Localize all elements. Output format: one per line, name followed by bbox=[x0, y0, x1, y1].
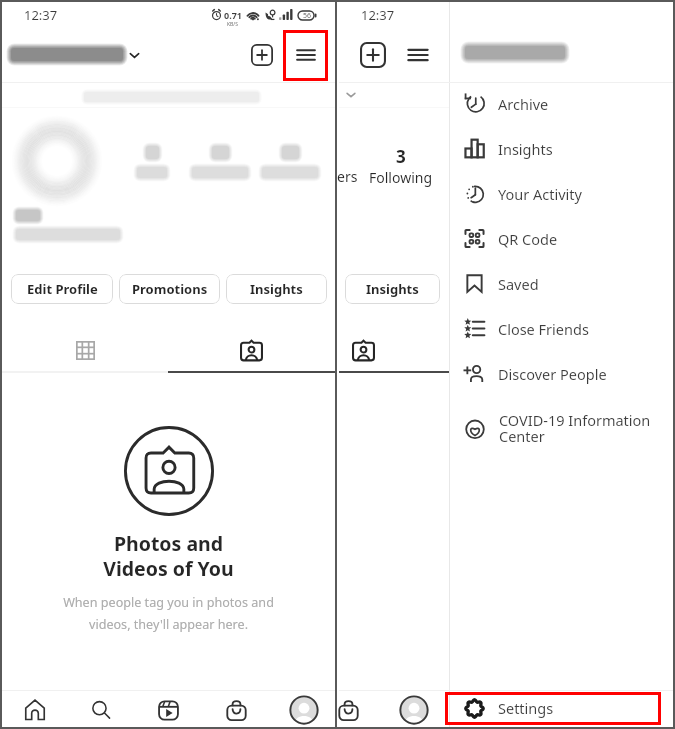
staticText: Discover People bbox=[498, 364, 607, 384]
button[interactable]: Insights bbox=[226, 274, 327, 304]
staticText: 12:37 bbox=[24, 6, 58, 24]
staticText: 3 bbox=[396, 145, 406, 168]
staticText: 0.71 bbox=[224, 9, 242, 21]
button[interactable]: Insights bbox=[345, 274, 440, 304]
staticText: Your Activity bbox=[498, 184, 582, 204]
button[interactable]: Reels bbox=[150, 691, 186, 729]
staticText: 12:37 bbox=[361, 6, 395, 24]
staticText: QR Code bbox=[498, 229, 558, 249]
staticText: Insights bbox=[250, 280, 303, 298]
button[interactable]: Insights bbox=[449, 126, 673, 171]
staticText: Following bbox=[369, 168, 433, 187]
button[interactable]: Profile bbox=[286, 691, 322, 729]
button[interactable]: Close Friends bbox=[449, 306, 673, 351]
button[interactable]: New post bbox=[355, 37, 391, 73]
button[interactable]: Menu bbox=[288, 37, 324, 73]
staticText: 56 bbox=[303, 11, 312, 21]
staticText: Insights bbox=[366, 280, 419, 298]
staticText: When people tag you in photos and videos… bbox=[63, 594, 274, 633]
staticText: Archive bbox=[498, 94, 549, 114]
staticText: Photos and Videos of You bbox=[103, 530, 234, 582]
staticText: Insights bbox=[498, 139, 553, 159]
button[interactable]: Grid posts bbox=[2, 328, 168, 372]
staticText: Edit Profile bbox=[27, 280, 98, 298]
staticText: Saved bbox=[498, 274, 539, 294]
button[interactable]: Home bbox=[17, 691, 53, 729]
staticText: COVID-19 Information Center bbox=[499, 410, 651, 447]
button[interactable]: Archive bbox=[449, 81, 673, 126]
button[interactable]: New post bbox=[244, 37, 280, 73]
button[interactable]: Shop bbox=[330, 691, 366, 729]
button[interactable]: COVID-19 Information Center bbox=[449, 400, 673, 456]
button[interactable]: Edit Profile bbox=[11, 274, 113, 304]
button[interactable]: Shop bbox=[218, 691, 254, 729]
button[interactable]: Saved bbox=[449, 261, 673, 306]
button[interactable]: Search bbox=[83, 691, 119, 729]
button[interactable]: Menu bbox=[400, 37, 436, 73]
staticText: ers bbox=[337, 167, 358, 186]
button[interactable]: QR Code bbox=[449, 216, 673, 261]
button[interactable]: Discover People bbox=[449, 351, 673, 396]
button[interactable]: Your Activity bbox=[449, 171, 673, 216]
staticText: Close Friends bbox=[498, 319, 589, 339]
staticText: KB/S bbox=[227, 21, 238, 28]
button[interactable]: Tagged bbox=[168, 328, 335, 372]
button[interactable]: Profile bbox=[396, 691, 432, 729]
staticText: Promotions bbox=[132, 280, 208, 298]
button[interactable]: Settings bbox=[449, 691, 673, 725]
staticText: Settings bbox=[498, 698, 554, 718]
button[interactable]: Promotions bbox=[119, 274, 220, 304]
